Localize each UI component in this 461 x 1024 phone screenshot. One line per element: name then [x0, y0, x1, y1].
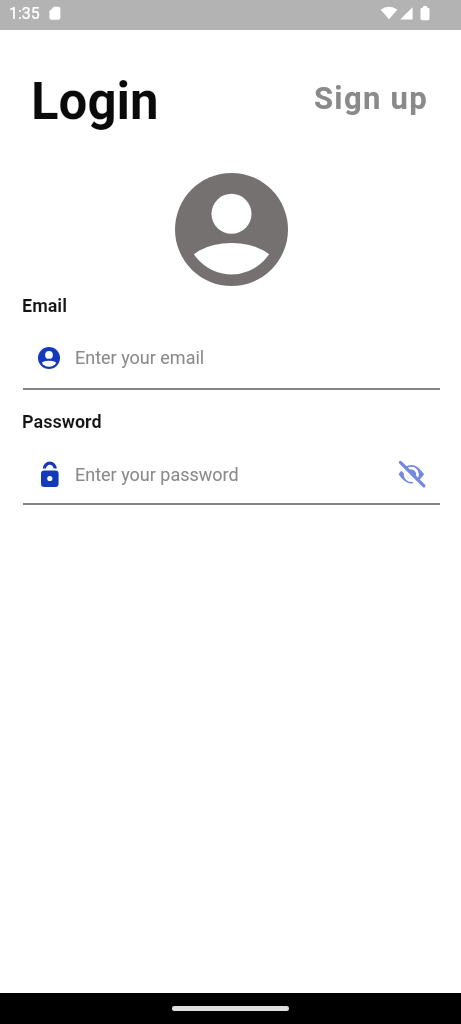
staticText: Email [22, 295, 67, 316]
button[interactable] [396, 458, 429, 491]
staticText: Login [31, 72, 159, 132]
staticText: 1:35 [9, 4, 40, 23]
button[interactable]: Enter your password [22, 453, 438, 495]
button[interactable]: Sign up [314, 80, 428, 116]
staticText: Enter your email [75, 347, 205, 368]
staticText: Password [22, 411, 102, 432]
button[interactable]: Enter your email [22, 337, 438, 379]
staticText: Sign up [314, 80, 428, 116]
staticText: Enter your password [75, 464, 239, 485]
